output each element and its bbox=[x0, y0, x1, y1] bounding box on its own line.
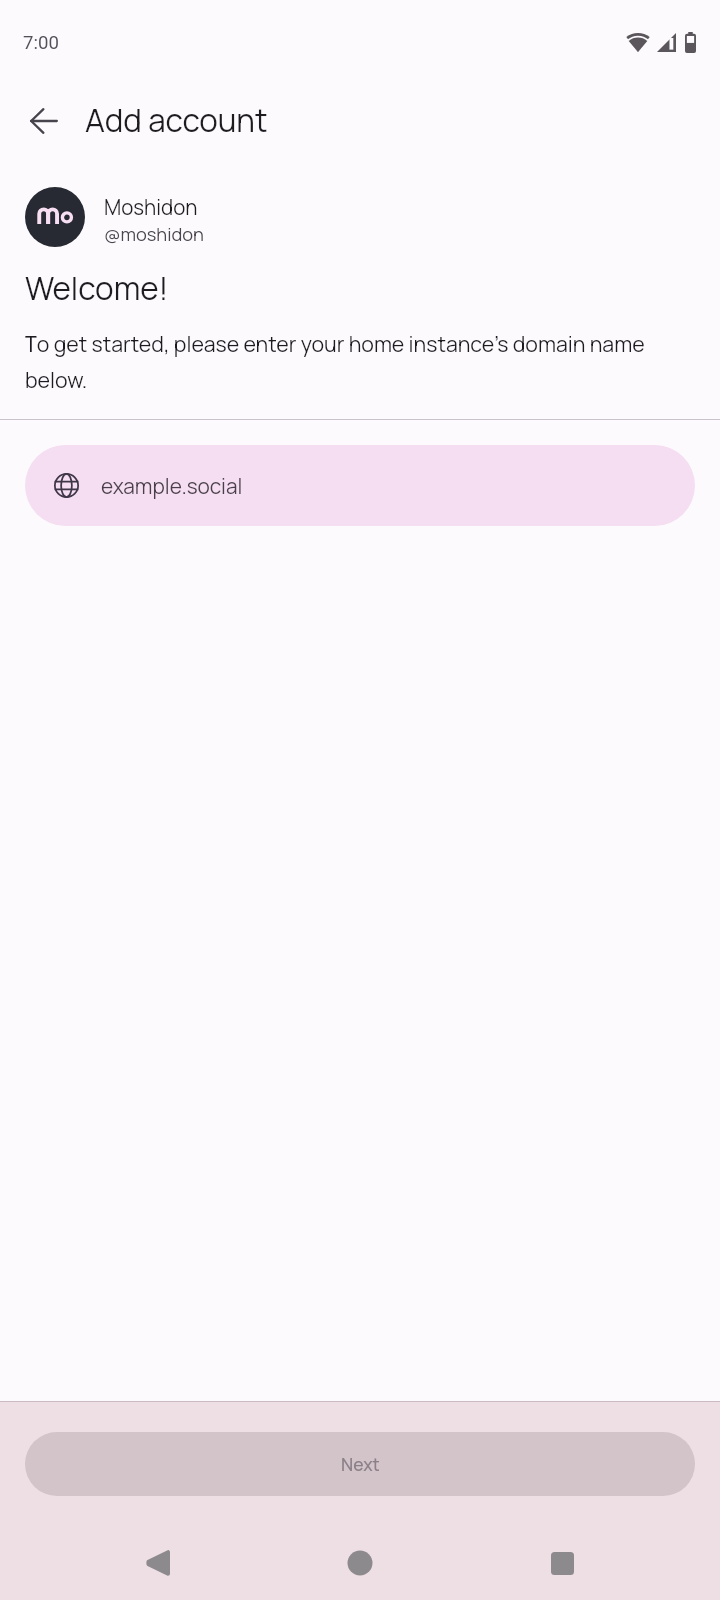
button[interactable]: Back bbox=[20, 97, 68, 145]
staticText: @moshidon bbox=[104, 221, 204, 246]
staticText: To get started, please enter your home i… bbox=[25, 329, 665, 395]
staticText: Welcome! bbox=[25, 267, 169, 310]
staticText: Add account bbox=[85, 99, 268, 142]
button[interactable]: Next bbox=[25, 1432, 695, 1496]
staticText: Moshidon bbox=[104, 193, 198, 221]
staticText: Next bbox=[341, 1452, 380, 1476]
staticText: example.social bbox=[101, 472, 243, 500]
button[interactable]: Back bbox=[133, 1539, 181, 1587]
button[interactable]: Home bbox=[336, 1539, 384, 1587]
button[interactable]: example.social bbox=[25, 445, 695, 526]
staticText: 7:00 bbox=[23, 32, 59, 54]
button[interactable]: Recent apps bbox=[538, 1539, 586, 1587]
